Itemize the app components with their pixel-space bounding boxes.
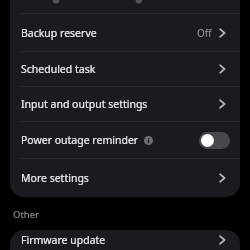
staticText: Other	[13, 208, 40, 221]
staticText: Scheduled task	[21, 62, 96, 76]
staticText: Firmware update	[21, 233, 106, 247]
button[interactable]: Backup reserve	[10, 14, 240, 51]
staticText: Off	[197, 26, 212, 40]
other: Open Firmware update	[216, 233, 230, 247]
other: Open Input and output settings	[216, 97, 230, 111]
button[interactable]: Power outage reminder	[10, 122, 240, 158]
button[interactable]: Scheduled task	[10, 52, 240, 86]
other: Open More settings	[216, 171, 230, 185]
staticText: Power outage reminder	[21, 133, 139, 147]
button[interactable]: Input and output settings	[10, 87, 240, 121]
staticText: Backup reserve	[21, 26, 97, 40]
other: Open Scheduled task	[216, 62, 230, 76]
button[interactable]: More settings	[10, 159, 240, 197]
button[interactable]: Firmware update	[10, 230, 240, 250]
staticText: More settings	[21, 171, 89, 185]
other: More information	[144, 136, 153, 145]
other: Open Backup reserve	[216, 26, 230, 40]
button[interactable]: Toggle Power outage reminder	[199, 132, 230, 149]
staticText: Input and output settings	[21, 97, 148, 111]
